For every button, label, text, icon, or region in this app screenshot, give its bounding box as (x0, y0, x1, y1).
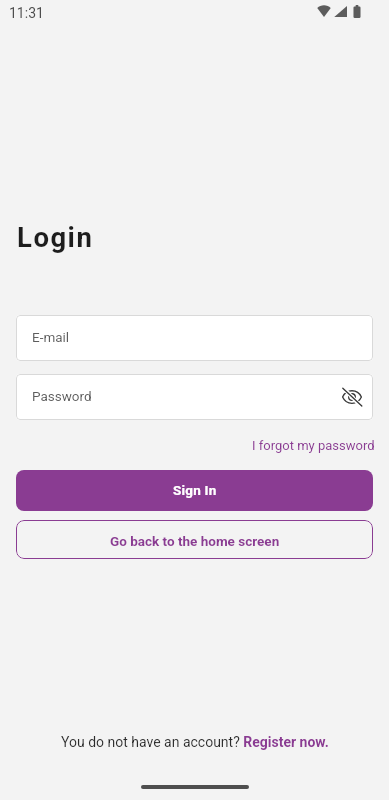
staticText: Login (17, 221, 94, 253)
button[interactable]: E-mail (16, 315, 373, 361)
button[interactable]: Sign In (16, 470, 373, 511)
staticText: Go back to the home screen (110, 533, 280, 549)
staticText: I forgot my password (252, 438, 375, 453)
button[interactable]: Go back to the home screen (16, 520, 373, 559)
button[interactable]: I forgot my password (252, 434, 375, 457)
staticText: E-mail (32, 329, 70, 345)
staticText: Sign In (173, 482, 217, 498)
staticText: 11:31 (9, 5, 44, 21)
button[interactable]: You do not have an account? Register now… (61, 734, 329, 750)
button[interactable]: Password (16, 374, 373, 420)
staticText: Password (32, 388, 92, 404)
button[interactable]: Show password (342, 387, 362, 407)
